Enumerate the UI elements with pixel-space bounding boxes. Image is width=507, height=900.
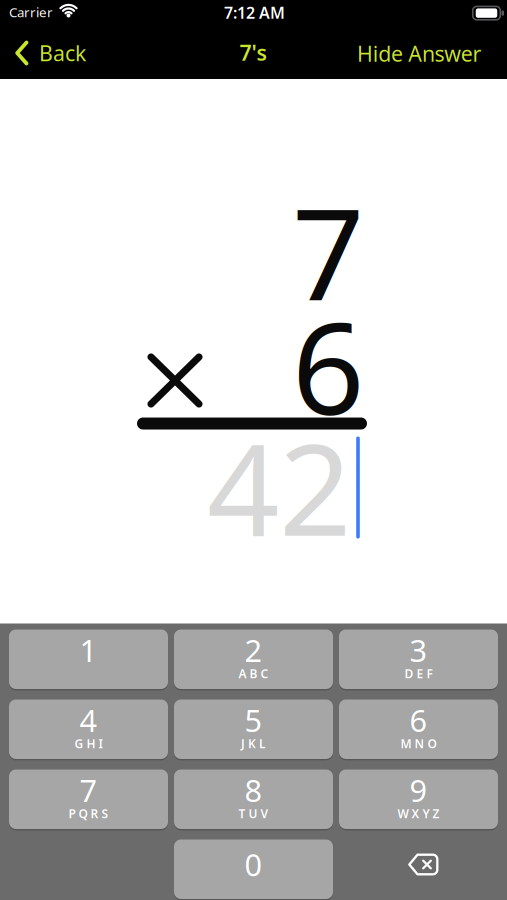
staticText: 7's: [239, 38, 267, 67]
button[interactable]: 5: [174, 699, 333, 759]
staticText: 3: [409, 630, 427, 670]
staticText: 6: [292, 281, 364, 450]
staticText: A B C: [238, 665, 268, 681]
staticText: 42: [207, 402, 351, 571]
staticText: Carrier: [9, 3, 53, 21]
staticText: 7: [79, 770, 97, 810]
staticText: 7:12 AM: [224, 2, 285, 23]
staticText: 1: [79, 630, 97, 670]
button[interactable]: 1: [9, 629, 168, 689]
staticText: Hide Answer: [357, 39, 481, 68]
staticText: 7: [292, 167, 364, 335]
staticText: 6: [409, 700, 427, 740]
staticText: T U V: [238, 805, 268, 821]
staticText: 9: [409, 770, 427, 810]
button[interactable]: 2: [174, 629, 333, 689]
staticText: W X Y Z: [397, 805, 439, 821]
staticText: 4: [79, 700, 97, 740]
button[interactable]: 7: [9, 769, 168, 829]
staticText: 2: [244, 630, 262, 670]
button[interactable]: Delete: [339, 839, 498, 899]
button[interactable]: 8: [174, 769, 333, 829]
button[interactable]: 4: [9, 699, 168, 759]
button[interactable]: 6: [339, 699, 498, 759]
staticText: 5: [244, 700, 262, 740]
button[interactable]: 9: [339, 769, 498, 829]
staticText: J K L: [241, 735, 266, 751]
staticText: P Q R S: [68, 805, 108, 821]
staticText: 0: [244, 844, 262, 885]
button[interactable]: Hide Answer: [321, 33, 481, 73]
button[interactable]: 0: [174, 839, 333, 899]
staticText: G H I: [74, 735, 102, 751]
staticText: Back: [39, 39, 86, 67]
staticText: M N O: [400, 735, 436, 751]
button[interactable]: Back: [15, 33, 105, 73]
staticText: D E F: [404, 665, 432, 681]
button[interactable]: 3: [339, 629, 498, 689]
staticText: 8: [244, 770, 262, 810]
